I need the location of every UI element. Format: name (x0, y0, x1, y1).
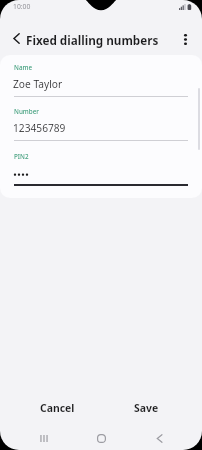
button[interactable]: More options (176, 30, 194, 48)
staticText: Zoe Taylor (13, 77, 63, 91)
button[interactable]: Recent apps (30, 427, 58, 449)
staticText: Save (134, 401, 159, 415)
staticText: 123456789 (13, 121, 66, 135)
staticText: •••• (13, 168, 29, 182)
staticText: 10:00 (13, 2, 31, 11)
button[interactable]: Save (112, 396, 180, 420)
staticText: Cancel (40, 401, 75, 415)
button[interactable]: Back (145, 427, 173, 449)
staticText: Fixed dialling numbers (26, 32, 159, 48)
button[interactable]: Home (87, 427, 115, 449)
staticText: Name (14, 63, 33, 72)
staticText: PIN2 (14, 152, 29, 161)
staticText: Number (14, 107, 39, 116)
button[interactable]: Cancel (23, 396, 91, 420)
button[interactable]: Navigate up (6, 28, 26, 48)
